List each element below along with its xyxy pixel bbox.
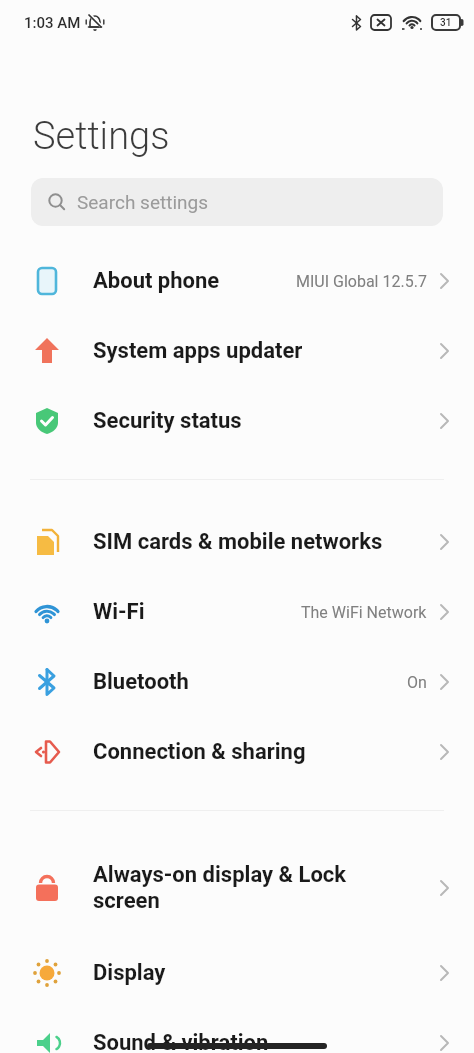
button[interactable]: Search settings	[31, 178, 443, 226]
staticText: Settings	[33, 114, 170, 159]
button[interactable]: Always-on display & Lock	[0, 838, 474, 938]
staticText: About phone	[93, 268, 220, 294]
staticText: 1:03 AM	[24, 14, 81, 32]
button[interactable]: SIM cards & mobile networks	[0, 507, 474, 577]
staticText: Connection & sharing	[93, 739, 306, 765]
button[interactable]: Connection & sharing	[0, 717, 474, 787]
staticText: Display	[93, 960, 166, 986]
staticText: The WiFi Network	[301, 603, 427, 622]
button[interactable]: System apps updater	[0, 316, 474, 386]
staticText: Always-on display & Lock	[93, 862, 347, 888]
button[interactable]: Bluetooth	[0, 647, 474, 717]
staticText: 31	[440, 17, 452, 29]
staticText: Sound & vibration	[93, 1030, 269, 1053]
staticText: screen	[93, 888, 160, 914]
staticText: On	[407, 673, 427, 692]
staticText: Security status	[93, 408, 242, 434]
staticText: MIUI Global 12.5.7	[296, 272, 427, 291]
staticText: System apps updater	[93, 338, 303, 364]
button[interactable]: About phone	[0, 246, 474, 316]
button[interactable]: Sound & vibration	[0, 1008, 474, 1053]
button[interactable]: Security status	[0, 386, 474, 456]
button[interactable]: Display	[0, 938, 474, 1008]
button[interactable]: Wi-Fi	[0, 577, 474, 647]
staticText: Search settings	[77, 191, 208, 213]
staticText: Wi-Fi	[93, 599, 145, 625]
staticText: SIM cards & mobile networks	[93, 529, 383, 555]
staticText: Bluetooth	[93, 669, 189, 695]
